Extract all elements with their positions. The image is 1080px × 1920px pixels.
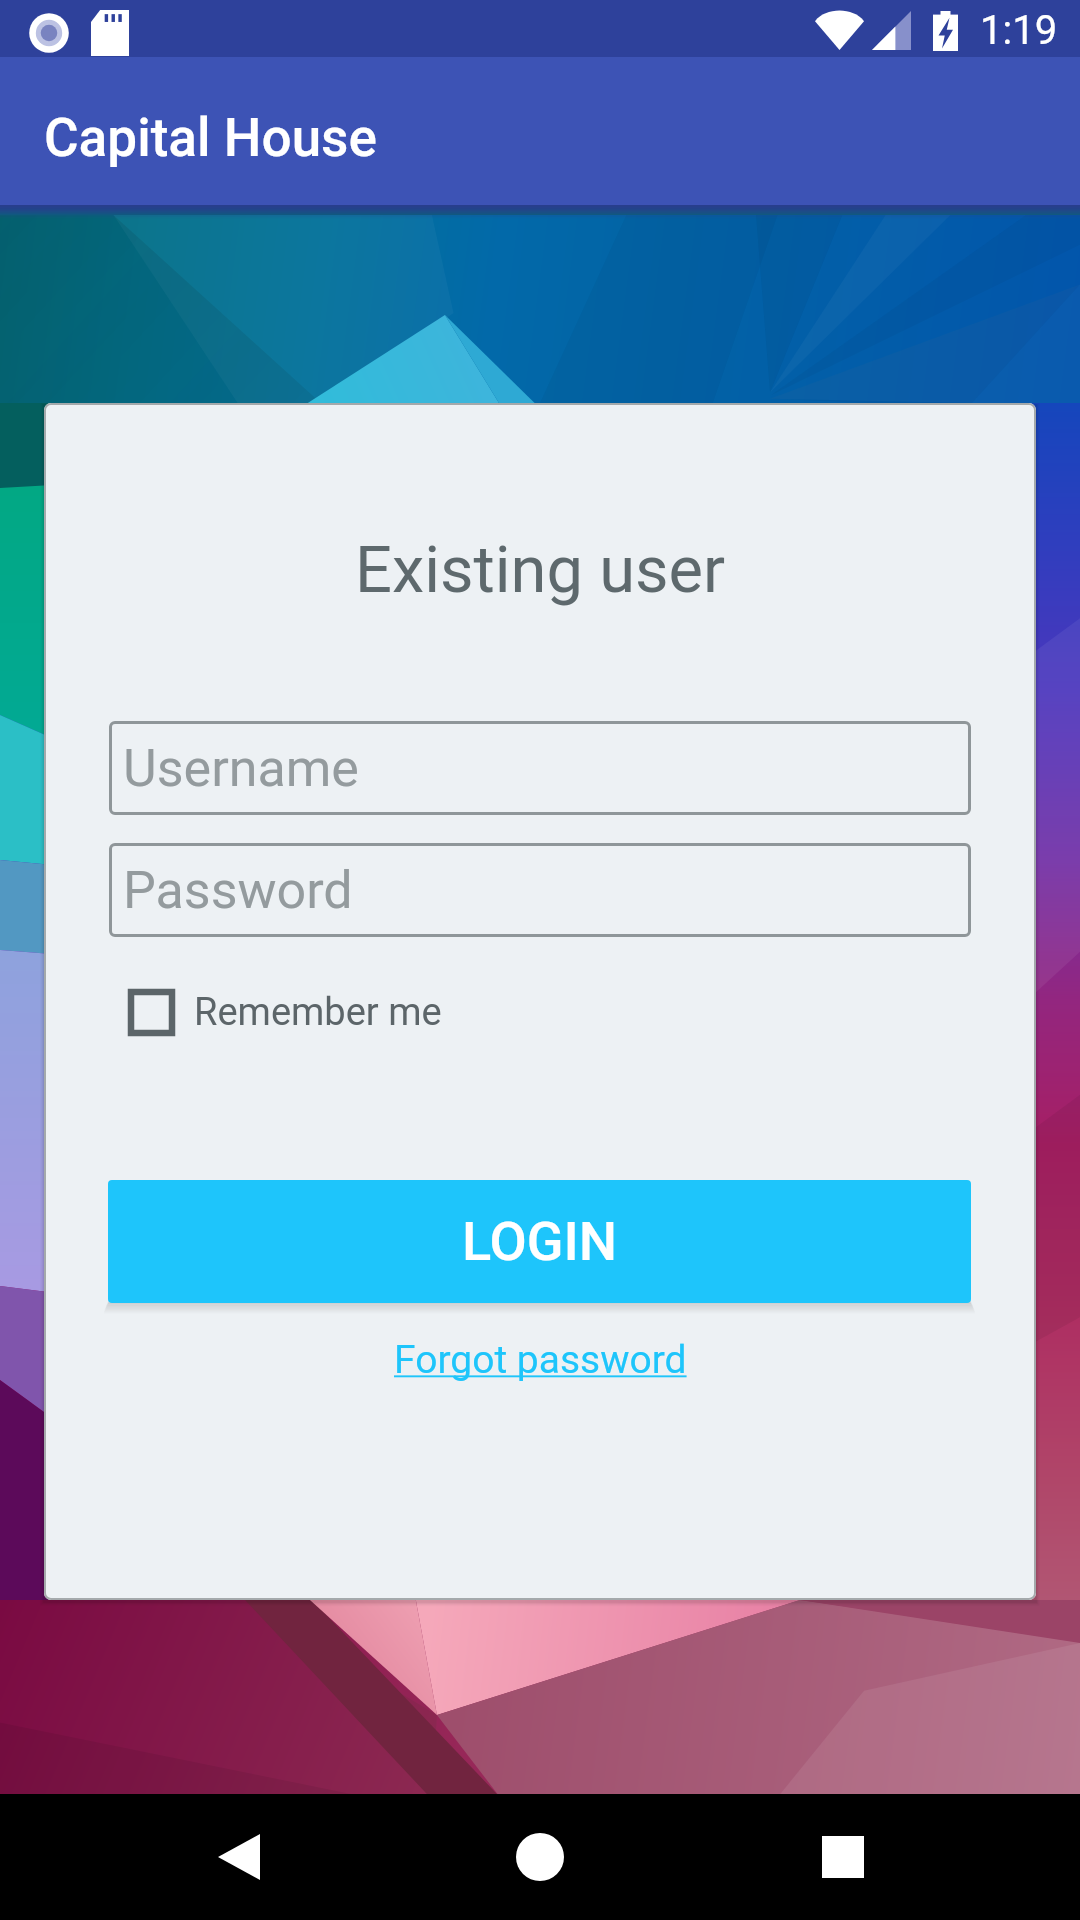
staticText: Remember me <box>194 990 442 1035</box>
staticText: Forgot password <box>394 1337 687 1383</box>
staticText: LOGIN <box>462 1210 618 1273</box>
button[interactable]: Back <box>179 1807 299 1907</box>
staticText: 1:19 <box>980 7 1058 54</box>
button[interactable]: Username <box>109 721 971 815</box>
staticText: Username <box>123 738 359 799</box>
button[interactable]: Home <box>480 1807 600 1907</box>
button[interactable]: Password <box>109 843 971 937</box>
staticText: Existing user <box>355 532 726 608</box>
staticText: Capital House <box>44 107 377 169</box>
button[interactable]: Recents <box>783 1807 903 1907</box>
button[interactable]: Remember me <box>128 984 442 1040</box>
button[interactable]: LOGIN <box>108 1180 971 1303</box>
button[interactable]: Forgot password <box>394 1337 687 1383</box>
staticText: Password <box>123 860 353 921</box>
